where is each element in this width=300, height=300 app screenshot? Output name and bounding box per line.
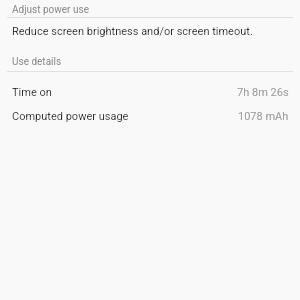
button[interactable]: Time on [0, 80, 300, 104]
button[interactable]: Computed power usage [0, 104, 300, 128]
staticText: Computed power usage [12, 110, 129, 123]
staticText: Use details [12, 56, 62, 68]
staticText: 1078 mAh [238, 110, 289, 123]
staticText: 7h 8m 26s [237, 86, 289, 99]
staticText: Adjust power use [12, 4, 89, 16]
staticText: Reduce screen brightness and/or screen t… [12, 25, 253, 38]
button[interactable]: Reduce screen brightness and/or screen t… [0, 18, 300, 42]
staticText: Time on [12, 86, 52, 99]
